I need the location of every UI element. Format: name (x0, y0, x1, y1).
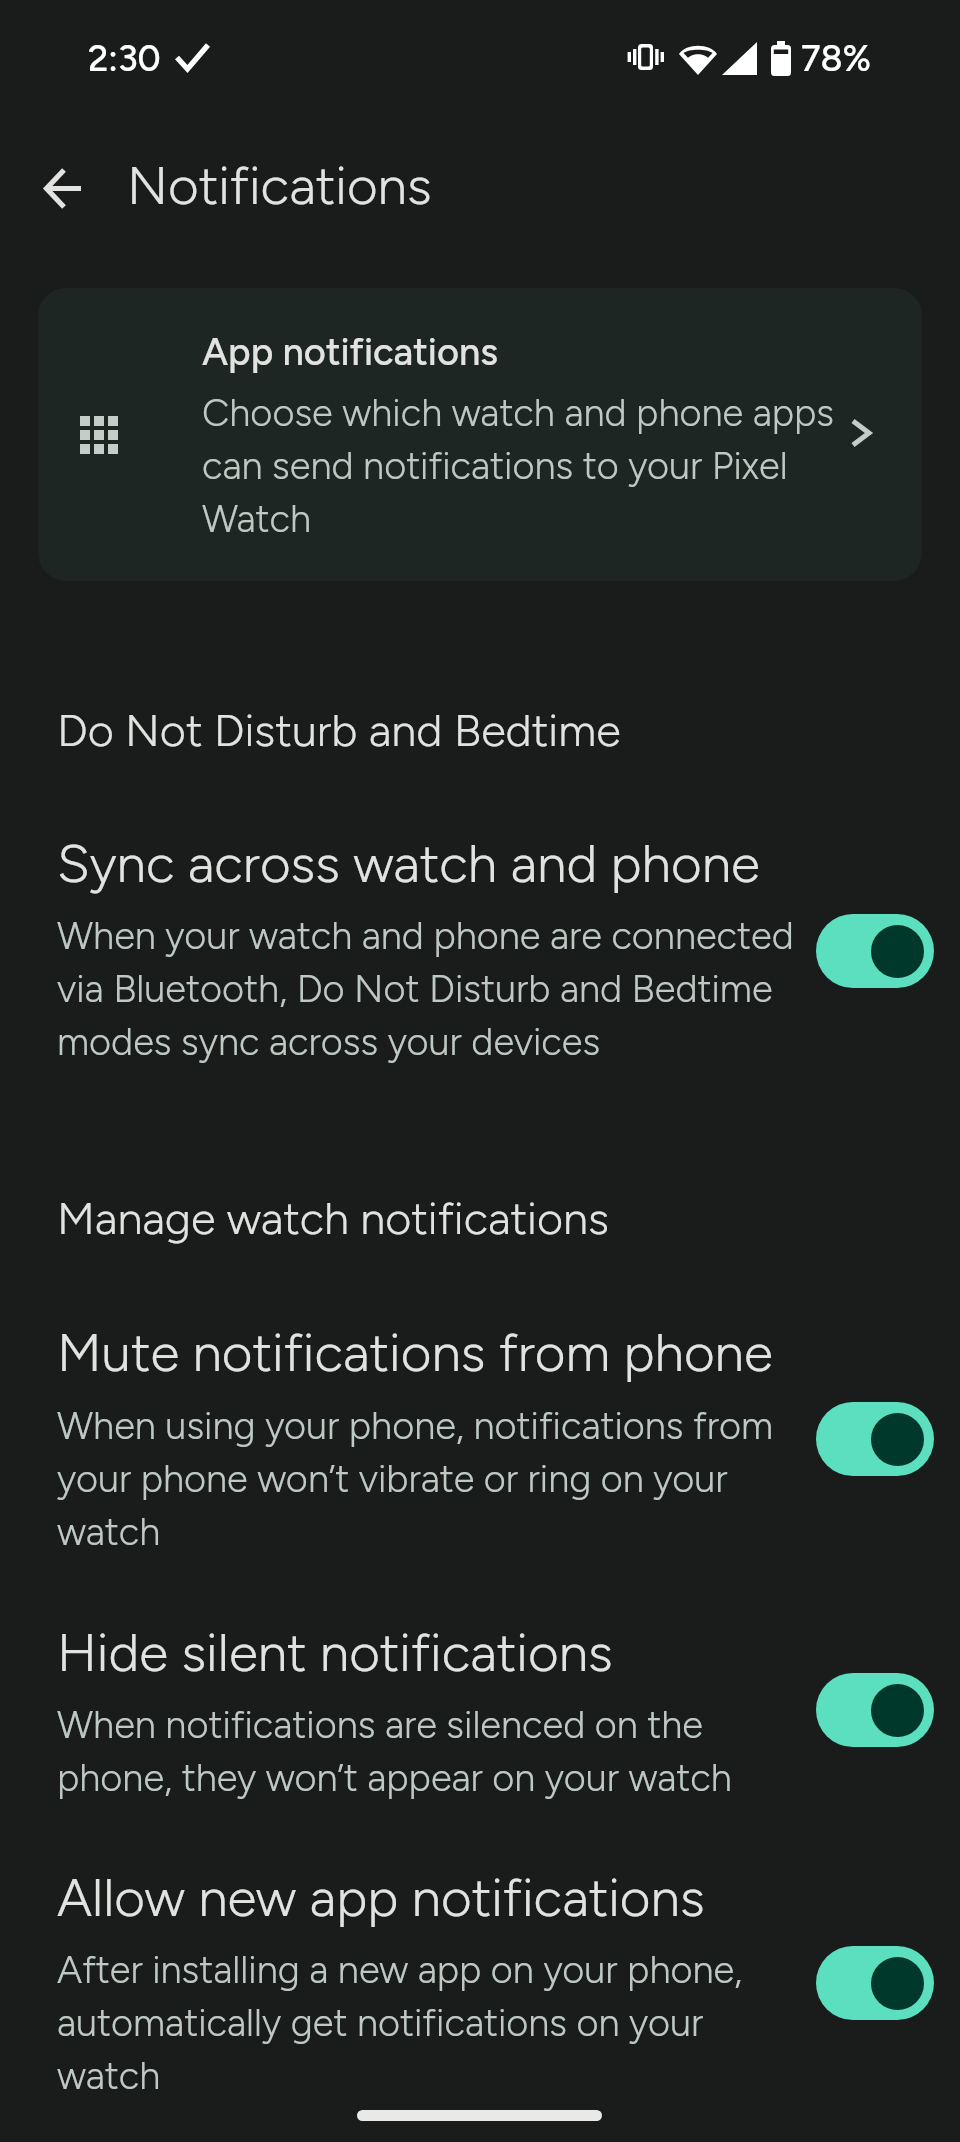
staticText: When using your phone, notifications fro… (57, 1397, 805, 1556)
staticText: When your watch and phone are connected … (57, 907, 805, 1066)
staticText: Manage watch notifications (57, 1191, 609, 1245)
button[interactable]: Navigate back (28, 153, 98, 223)
button[interactable]: Allow new app notifications (0, 1867, 960, 2112)
button[interactable]: Toggle setting on or off (816, 1946, 934, 2020)
button[interactable]: Toggle setting on or off (816, 914, 934, 988)
staticText: After installing a new app on your phone… (57, 1941, 805, 2100)
other: Open app notifications (849, 414, 875, 452)
staticText: 78% (801, 36, 872, 80)
staticText: Sync across watch and phone (57, 833, 877, 895)
button[interactable]: App notifications (38, 288, 922, 581)
button[interactable]: Mute notifications from phone (0, 1322, 960, 1568)
staticText: 2:30 (88, 36, 161, 80)
button[interactable]: Hide silent notifications (0, 1622, 960, 1867)
staticText: App notifications (202, 323, 498, 376)
button[interactable]: Toggle setting on or off (816, 1673, 934, 1747)
button[interactable]: Toggle setting on or off (816, 1402, 934, 1476)
staticText: Hide silent notifications (57, 1622, 877, 1684)
button[interactable]: Sync across watch and phone (0, 833, 960, 1078)
staticText: When notifications are silenced on the p… (57, 1696, 805, 1802)
staticText: Mute notifications from phone (57, 1322, 877, 1384)
staticText: Choose which watch and phone apps can se… (202, 384, 867, 543)
staticText: Do Not Disturb and Bedtime (57, 703, 621, 757)
staticText: Notifications (127, 155, 432, 217)
staticText: Allow new app notifications (57, 1867, 877, 1929)
